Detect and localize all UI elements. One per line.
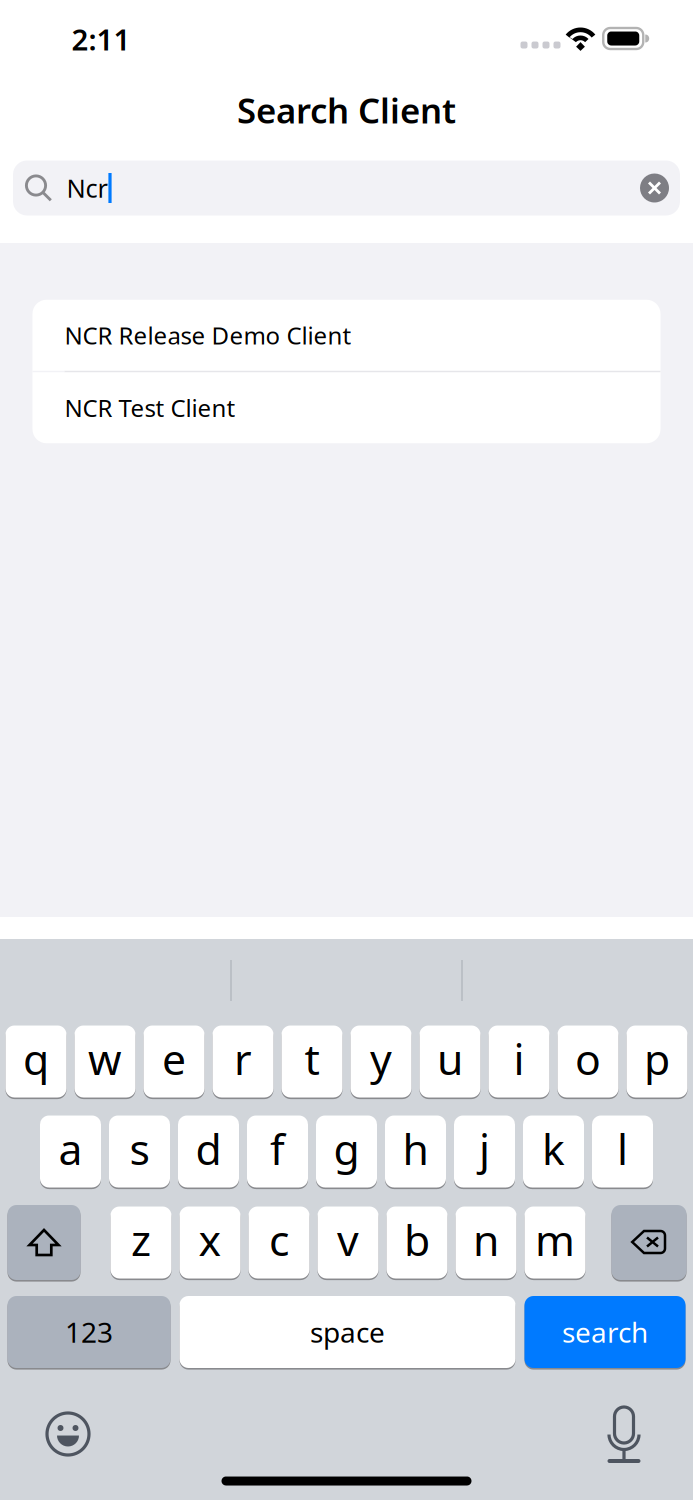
button[interactable]: q xyxy=(5,1024,66,1099)
button[interactable]: p xyxy=(626,1024,687,1099)
staticText: y xyxy=(370,1030,392,1087)
button[interactable]: v xyxy=(317,1205,378,1280)
button[interactable]: n xyxy=(455,1205,516,1280)
staticText: search xyxy=(562,1313,648,1351)
button[interactable]: m xyxy=(524,1205,585,1280)
button[interactable]: e xyxy=(143,1024,204,1099)
staticText: g xyxy=(333,1120,359,1177)
staticText: x xyxy=(198,1211,221,1268)
staticText: v xyxy=(337,1211,359,1268)
staticText: space xyxy=(310,1313,385,1351)
button[interactable]: a xyxy=(40,1114,101,1189)
button[interactable]: u xyxy=(419,1024,480,1099)
staticText: m xyxy=(535,1211,575,1268)
staticText: k xyxy=(542,1120,565,1177)
staticText: q xyxy=(23,1030,49,1087)
staticText: b xyxy=(404,1211,430,1268)
button[interactable]: NCR Test Client xyxy=(32,372,660,443)
button[interactable]: s xyxy=(109,1114,170,1189)
button[interactable]: 123 xyxy=(7,1294,170,1370)
button[interactable]: c xyxy=(248,1205,309,1280)
button[interactable]: Dictation xyxy=(593,1403,655,1465)
staticText: e xyxy=(162,1030,186,1087)
button[interactable]: r xyxy=(212,1024,273,1099)
button[interactable]: h xyxy=(385,1114,446,1189)
staticText: 123 xyxy=(65,1313,113,1351)
button[interactable]: g xyxy=(316,1114,377,1189)
staticText: r xyxy=(234,1030,252,1087)
button[interactable]: Clear text xyxy=(628,160,680,215)
button[interactable]: j xyxy=(454,1114,515,1189)
button[interactable]: o xyxy=(557,1024,618,1099)
staticText: j xyxy=(479,1120,490,1177)
staticText: Search Client xyxy=(237,87,456,133)
button[interactable]: Ncr xyxy=(13,160,680,215)
button[interactable]: f xyxy=(247,1114,308,1189)
staticText: p xyxy=(644,1030,670,1087)
button[interactable]: search xyxy=(524,1294,685,1370)
staticText: z xyxy=(131,1211,151,1268)
staticText: NCR Test Client xyxy=(64,392,235,424)
staticText: w xyxy=(88,1030,122,1087)
button[interactable]: Emoji keyboard xyxy=(37,1403,99,1465)
staticText: Ncr xyxy=(66,171,107,205)
staticText: t xyxy=(304,1030,319,1087)
staticText: o xyxy=(575,1030,601,1087)
staticText: n xyxy=(473,1211,499,1268)
button[interactable]: z xyxy=(110,1205,171,1280)
staticText: l xyxy=(617,1120,628,1177)
staticText: NCR Release Demo Client xyxy=(64,319,351,351)
staticText: 2:11 xyxy=(71,19,130,58)
button[interactable]: t xyxy=(281,1024,342,1099)
button[interactable]: y xyxy=(350,1024,411,1099)
button[interactable]: space xyxy=(179,1294,515,1370)
staticText: f xyxy=(270,1120,285,1177)
staticText: i xyxy=(513,1030,524,1087)
button[interactable]: x xyxy=(179,1205,240,1280)
staticText: s xyxy=(129,1120,149,1177)
staticText: h xyxy=(402,1120,428,1177)
button[interactable]: Delete xyxy=(611,1203,686,1282)
button[interactable]: k xyxy=(523,1114,584,1189)
button[interactable]: i xyxy=(488,1024,549,1099)
staticText: d xyxy=(195,1120,221,1177)
button[interactable]: d xyxy=(178,1114,239,1189)
button[interactable]: w xyxy=(74,1024,135,1099)
button[interactable]: b xyxy=(386,1205,447,1280)
staticText: c xyxy=(269,1211,289,1268)
button[interactable]: l xyxy=(592,1114,653,1189)
staticText: a xyxy=(58,1120,82,1177)
button[interactable]: NCR Release Demo Client xyxy=(32,300,660,371)
button[interactable]: Shift xyxy=(7,1203,80,1282)
staticText: u xyxy=(437,1030,463,1087)
